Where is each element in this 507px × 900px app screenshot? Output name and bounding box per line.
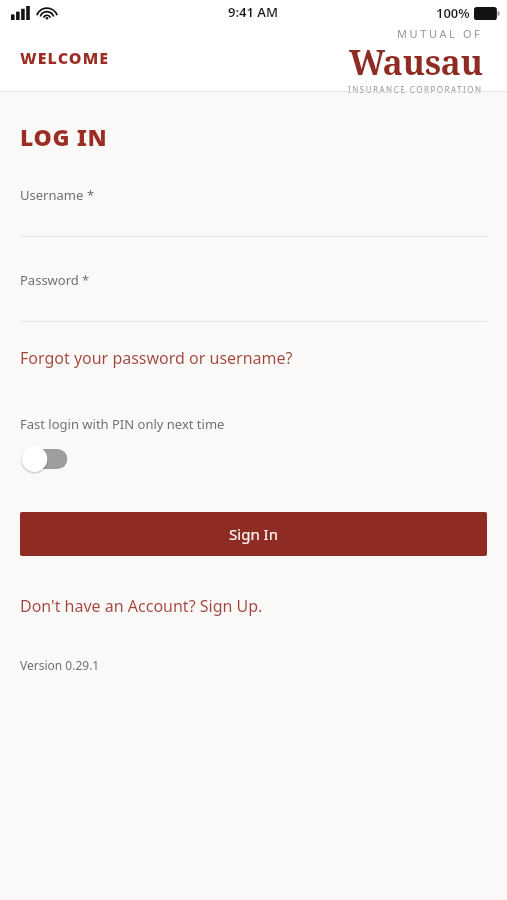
staticText: Wausau	[349, 39, 483, 85]
staticText: 9:41 AM	[228, 3, 279, 21]
button[interactable]: Sign In	[20, 512, 487, 556]
button[interactable]: Don't have an Account? Sign Up.	[20, 595, 487, 617]
staticText: LOG IN	[20, 121, 108, 152]
staticText: Username	[20, 186, 84, 204]
button[interactable]: Fast login with PIN toggle	[20, 445, 72, 473]
staticText: INSURANCE CORPORATION	[348, 84, 483, 95]
staticText: WELCOME	[20, 47, 110, 69]
staticText: 100%	[436, 4, 470, 22]
staticText: *	[82, 271, 90, 289]
staticText: Don't have an Account? Sign Up.	[20, 595, 263, 617]
staticText: Version 0.29.1	[20, 657, 100, 673]
button[interactable]: Password	[20, 271, 487, 322]
staticText: MUTUAL OF	[397, 26, 483, 41]
staticText: Sign In	[229, 524, 278, 544]
staticText: Fast login with PIN only next time	[20, 415, 225, 433]
button[interactable]: Username	[20, 186, 487, 237]
button[interactable]: Forgot your password or username?	[20, 347, 487, 369]
staticText: *	[87, 186, 95, 204]
staticText: Forgot your password or username?	[20, 347, 293, 369]
staticText: Password	[20, 271, 79, 289]
